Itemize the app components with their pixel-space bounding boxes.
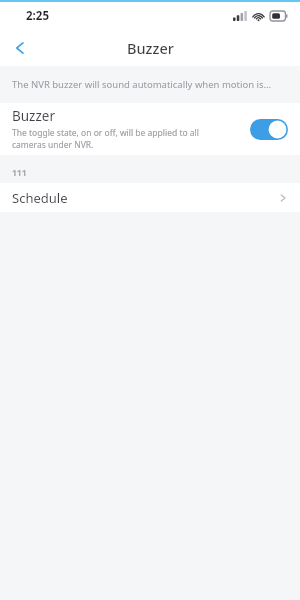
staticText: Buzzer (12, 107, 55, 125)
staticText: 2:25 (26, 8, 49, 24)
staticText: The toggle state, on or off, will be app… (12, 127, 200, 139)
staticText: cameras under NVR. (12, 139, 94, 151)
other: Open Schedule (278, 193, 288, 203)
staticText: Buzzer (127, 38, 174, 58)
button[interactable]: Buzzer (0, 103, 300, 155)
staticText: Schedule (12, 189, 278, 207)
button[interactable]: Back (0, 30, 40, 66)
staticText: The NVR buzzer will sound automatically … (12, 78, 272, 91)
button[interactable]: Buzzer toggle (250, 119, 288, 140)
staticText: 111 (12, 167, 27, 179)
button[interactable]: Schedule (0, 183, 300, 212)
